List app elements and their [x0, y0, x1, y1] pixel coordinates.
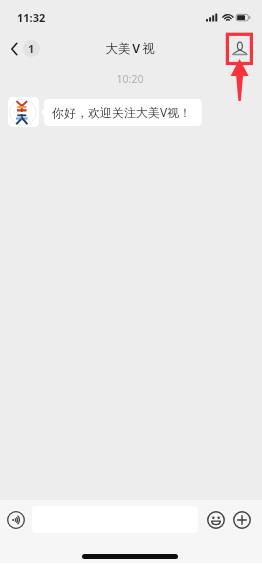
button[interactable]: Voice message: [5, 509, 26, 530]
staticText: 你好，欢迎关注大美V视！: [52, 104, 192, 120]
staticText: 1: [28, 41, 35, 56]
button[interactable]: 大美V视 avatar: [8, 97, 39, 127]
button[interactable]: Contact info: [231, 40, 249, 57]
staticText: 11:32: [17, 10, 46, 25]
button[interactable]: Back: [8, 38, 42, 59]
staticText: 10:20: [0, 72, 261, 86]
button[interactable]: 你好，欢迎关注大美V视！: [44, 99, 202, 126]
button[interactable]: More options: [231, 509, 252, 530]
button[interactable]: Emoji: [205, 509, 226, 530]
staticText: 大美 V 视: [0, 40, 261, 57]
